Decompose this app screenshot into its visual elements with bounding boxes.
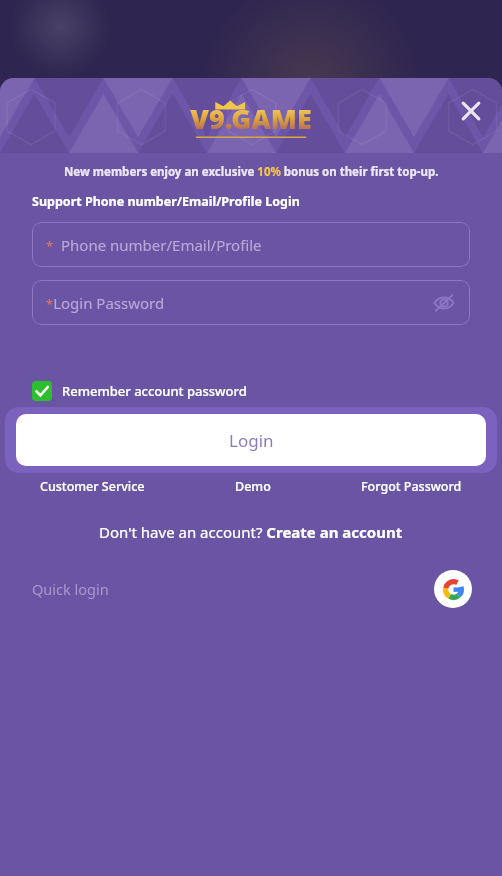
staticText: *Login Password (46, 293, 165, 313)
staticText: Remember account password (62, 382, 247, 400)
staticText: New members enjoy an exclusive 10% bonus… (64, 164, 439, 180)
staticText: Quick login (32, 579, 109, 599)
staticText: Login (229, 429, 274, 452)
button[interactable]: * Phone number/Email/Profile (32, 222, 470, 267)
button[interactable]: Customer Service (40, 478, 145, 495)
button[interactable]: Demo (235, 478, 271, 495)
button[interactable]: Close (454, 94, 488, 128)
staticText: Don't have an account? Create an account (99, 522, 403, 542)
staticText: Support Phone number/Email/Profile Login (32, 193, 300, 210)
staticText: * Phone number/Email/Profile (46, 235, 262, 255)
button[interactable]: Toggle password visibility (432, 291, 456, 315)
button[interactable]: Forgot Password (361, 478, 462, 495)
staticText: Customer Service (40, 478, 145, 495)
button[interactable]: Sign in with Google (434, 570, 472, 608)
button[interactable]: Login (16, 414, 486, 466)
button[interactable]: Remember account password (32, 381, 247, 401)
button[interactable]: Don't have an account? Create an account (99, 522, 403, 542)
staticText: Forgot Password (361, 478, 462, 495)
button[interactable]: *Login Password (32, 280, 470, 325)
staticText: Demo (235, 478, 271, 495)
staticText: V9.GAME (190, 100, 312, 137)
